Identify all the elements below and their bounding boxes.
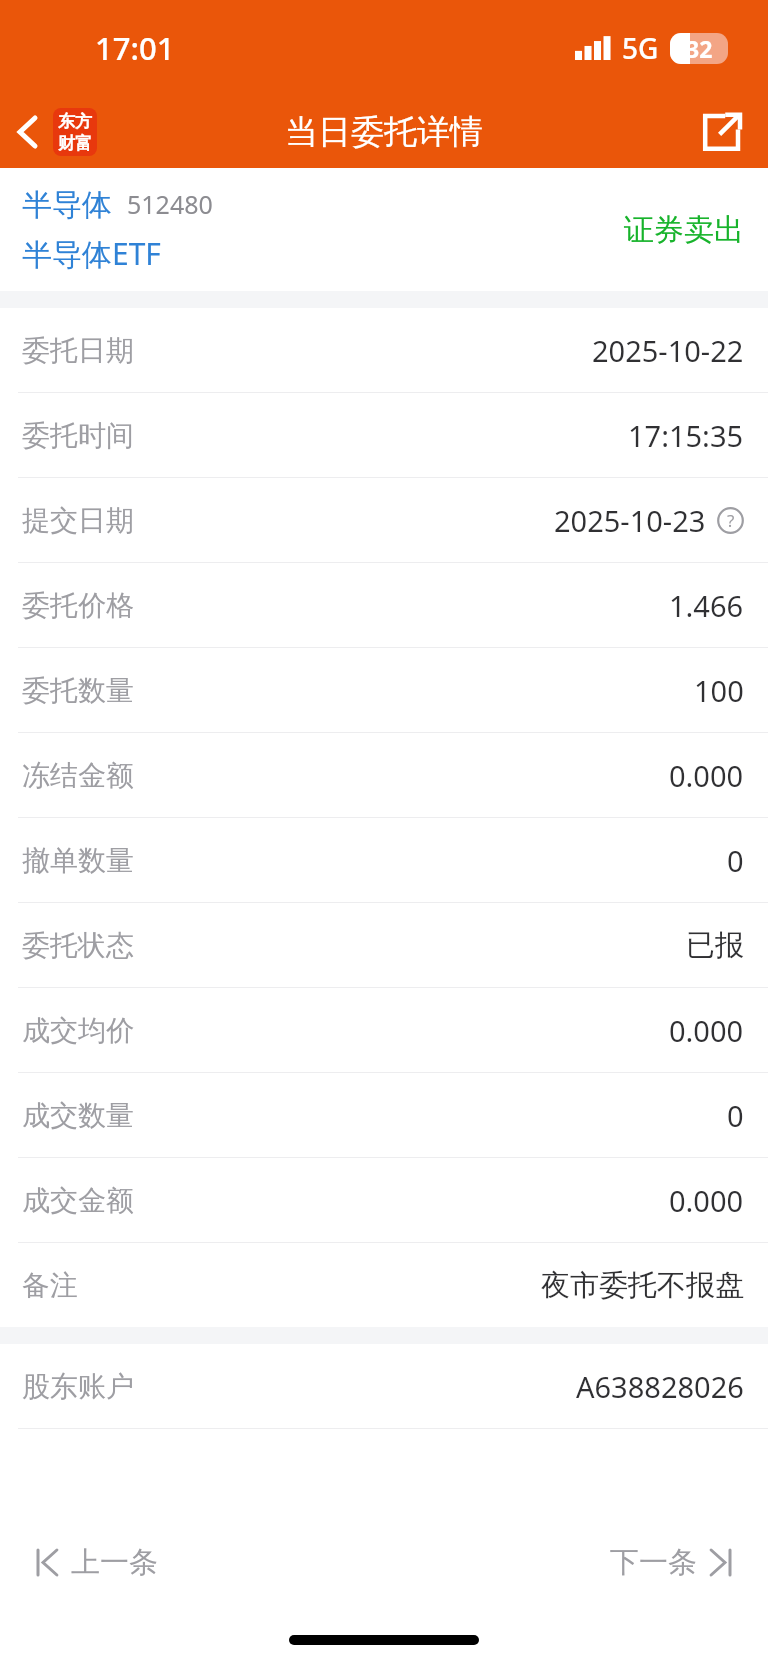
- staticText: 下一条: [610, 1544, 697, 1581]
- button[interactable]: 冻结金额: [0, 733, 768, 817]
- button[interactable]: 上一条: [28, 1532, 166, 1593]
- button[interactable]: 股东账户: [0, 1344, 768, 1428]
- staticText: 512480: [127, 187, 213, 221]
- staticText: 0.000: [669, 1181, 744, 1220]
- staticText: 证券卖出: [624, 211, 744, 249]
- staticText: 32: [686, 33, 713, 64]
- button[interactable]: 撤单数量: [0, 818, 768, 902]
- button[interactable]: 成交数量: [0, 1073, 768, 1157]
- staticText: 委托数量: [22, 673, 134, 708]
- staticText: 半导体ETF: [22, 233, 161, 274]
- staticText: 5G: [622, 29, 659, 67]
- staticText: 0.000: [669, 1011, 744, 1050]
- staticText: 夜市委托不报盘: [541, 1267, 744, 1304]
- staticText: 东方: [58, 111, 92, 132]
- button[interactable]: 备注: [0, 1243, 768, 1327]
- staticText: 半导体: [22, 186, 112, 224]
- staticText: 成交均价: [22, 1013, 134, 1048]
- staticText: A638828026: [576, 1367, 744, 1406]
- staticText: 冻结金额: [22, 758, 134, 793]
- staticText: 0.000: [669, 756, 744, 795]
- button[interactable]: 委托数量: [0, 648, 768, 732]
- staticText: 委托日期: [22, 333, 134, 368]
- button[interactable]: 委托状态: [0, 903, 768, 987]
- staticText: 撤单数量: [22, 843, 134, 878]
- staticText: 委托状态: [22, 928, 134, 963]
- staticText: 委托时间: [22, 418, 134, 453]
- staticText: 0: [727, 1096, 744, 1135]
- staticText: 提交日期: [22, 503, 134, 538]
- staticText: 17:15:35: [628, 416, 744, 455]
- staticText: 委托价格: [22, 588, 134, 623]
- staticText: 2025-10-23: [554, 501, 706, 540]
- staticText: 2025-10-22: [592, 331, 744, 370]
- staticText: 备注: [22, 1268, 78, 1303]
- button[interactable]: Share: [676, 100, 768, 164]
- button[interactable]: 提交日期: [0, 478, 768, 562]
- staticText: ?: [727, 509, 735, 532]
- button[interactable]: 下一条: [602, 1532, 740, 1593]
- button[interactable]: 委托价格: [0, 563, 768, 647]
- staticText: 成交金额: [22, 1183, 134, 1218]
- button[interactable]: 委托日期: [0, 308, 768, 392]
- staticText: 上一条: [71, 1544, 158, 1581]
- staticText: 股东账户: [22, 1369, 134, 1404]
- button[interactable]: 委托时间: [0, 393, 768, 477]
- staticText: 1.466: [669, 586, 744, 625]
- staticText: 0: [727, 841, 744, 880]
- button[interactable]: 成交均价: [0, 988, 768, 1072]
- button[interactable]: 成交金额: [0, 1158, 768, 1242]
- button[interactable]: Back: [0, 100, 111, 164]
- staticText: 100: [694, 671, 744, 710]
- staticText: 已报: [686, 927, 744, 964]
- staticText: 17:01: [95, 27, 175, 69]
- staticText: 财富: [58, 133, 92, 154]
- staticText: 当日委托详情: [285, 111, 483, 153]
- staticText: 成交数量: [22, 1098, 134, 1133]
